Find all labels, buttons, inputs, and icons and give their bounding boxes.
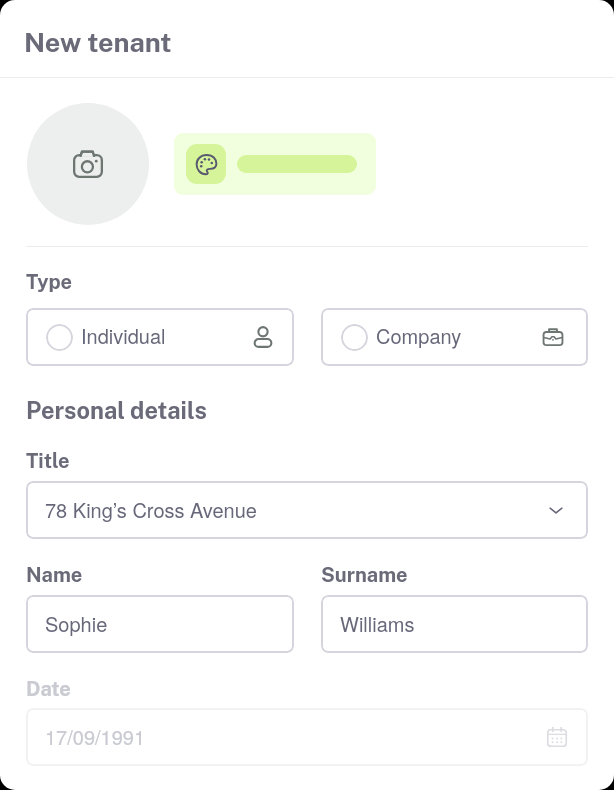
staticText: Individual [81, 321, 166, 350]
button[interactable]: Choose avatar colour [174, 133, 376, 195]
staticText: Type [26, 270, 73, 294]
staticText: Personal details [26, 397, 207, 425]
staticText: New tenant [24, 26, 172, 58]
button[interactable]: Company [321, 308, 588, 366]
staticText: Williams [340, 609, 415, 638]
staticText: Surname [321, 563, 408, 587]
button[interactable]: 78 King’s Cross Avenue [26, 481, 588, 539]
staticText: Date [26, 677, 71, 701]
button[interactable]: Individual [26, 308, 294, 366]
staticText: 78 King’s Cross Avenue [45, 495, 257, 524]
staticText: Name [26, 563, 83, 587]
button[interactable]: Add photo [27, 103, 149, 225]
button[interactable]: 17/09/1991 [26, 708, 588, 766]
button[interactable]: Sophie [26, 595, 294, 653]
staticText: Sophie [45, 609, 108, 638]
staticText: Company [376, 321, 462, 350]
staticText: 17/09/1991 [45, 722, 146, 751]
button[interactable]: Williams [321, 595, 588, 653]
staticText: Title [26, 449, 70, 473]
